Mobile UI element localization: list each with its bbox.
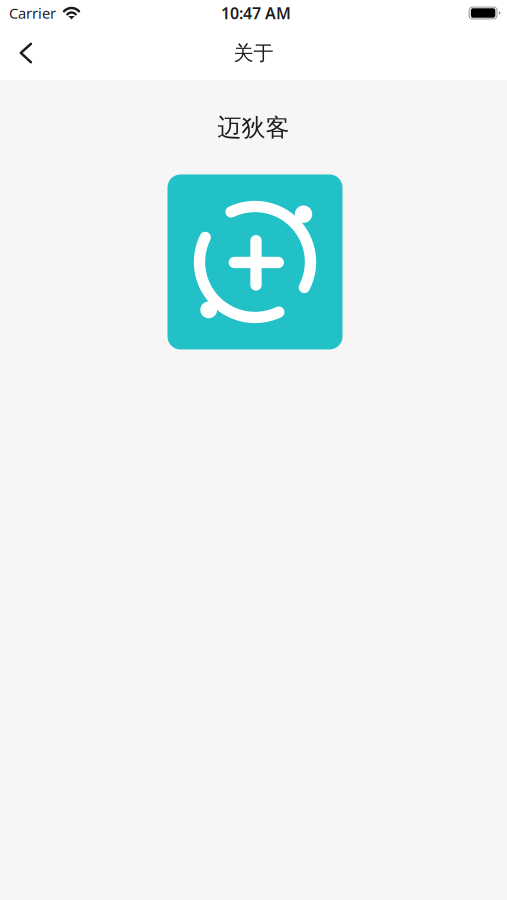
button[interactable]: Back [0, 31, 52, 75]
staticText: 关于 [233, 41, 273, 65]
staticText: 10:47 AM [221, 2, 291, 24]
staticText: 迈狄客 [217, 113, 289, 142]
staticText: Carrier [9, 3, 56, 23]
